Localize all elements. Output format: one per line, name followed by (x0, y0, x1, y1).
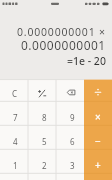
button[interactable] (28, 140, 56, 160)
staticText: × (95, 110, 101, 124)
button[interactable] (56, 160, 84, 180)
button[interactable] (0, 100, 28, 120)
button[interactable] (28, 160, 56, 180)
staticText: =1e - 20 (67, 54, 106, 68)
staticText: 4 (13, 136, 18, 147)
staticText: 6 (70, 136, 75, 147)
button[interactable] (56, 140, 84, 160)
staticText: 3 (70, 160, 75, 171)
button[interactable] (28, 80, 56, 100)
button[interactable] (28, 100, 56, 120)
button[interactable] (84, 80, 112, 100)
button[interactable] (0, 120, 28, 140)
staticText: 0.0000000001 (21, 37, 106, 53)
button[interactable] (0, 80, 28, 100)
staticText: 8 (42, 112, 47, 123)
staticText: 2 (42, 160, 47, 171)
button[interactable] (56, 100, 84, 120)
button[interactable] (84, 160, 112, 180)
button[interactable] (84, 140, 112, 160)
button[interactable] (56, 80, 84, 100)
button[interactable] (56, 120, 84, 140)
staticText: 0.0000000001 × (17, 25, 106, 39)
staticText: − (95, 134, 101, 148)
staticText: 7 (13, 112, 18, 123)
staticText: 9 (70, 112, 75, 123)
button[interactable] (0, 160, 28, 180)
staticText: 1 (13, 160, 18, 171)
staticText: + (95, 158, 101, 172)
staticText: 5 (42, 136, 47, 147)
button[interactable] (84, 100, 112, 120)
button[interactable] (0, 140, 28, 160)
button[interactable] (28, 120, 56, 140)
staticText: C (12, 88, 18, 99)
